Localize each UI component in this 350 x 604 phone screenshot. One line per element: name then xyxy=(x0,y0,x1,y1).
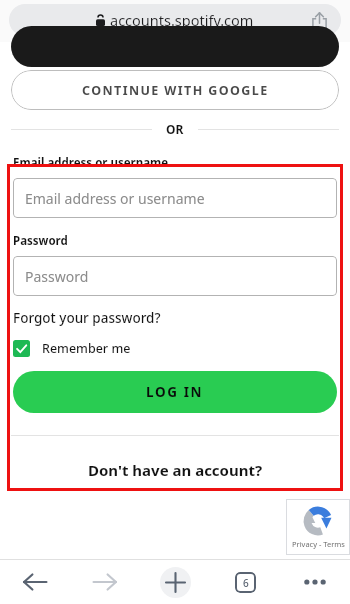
button[interactable]: reCAPTCHA privacy and terms xyxy=(286,499,350,555)
staticText: accounts.spotify.com xyxy=(110,10,254,30)
button[interactable]: Forward xyxy=(70,560,140,604)
staticText: 6 xyxy=(243,576,249,590)
button[interactable]: Email address or username xyxy=(13,178,337,218)
staticText: Forgot your password? xyxy=(13,309,161,327)
button[interactable]: LOG IN xyxy=(13,371,337,413)
button[interactable]: More xyxy=(280,560,350,604)
staticText: Remember me xyxy=(42,340,131,357)
staticText: Email address or username xyxy=(13,155,169,171)
button[interactable]: New tab xyxy=(140,560,210,604)
button[interactable]: Tabs xyxy=(210,560,280,604)
button[interactable]: CONTINUE WITH GOOGLE xyxy=(11,70,339,110)
button[interactable]: Share xyxy=(307,8,331,32)
staticText: Password xyxy=(13,233,68,249)
button[interactable]: Back xyxy=(0,560,70,604)
button[interactable]: Forgot your password? xyxy=(13,309,161,327)
staticText: CONTINUE WITH GOOGLE xyxy=(82,82,269,99)
staticText: Privacy - Terms xyxy=(292,539,345,549)
button[interactable] xyxy=(11,26,339,67)
staticText: Don't have an account? xyxy=(88,460,263,480)
button[interactable]: Password xyxy=(13,256,337,296)
staticText: Password xyxy=(25,267,89,286)
button[interactable]: accounts.spotify.com xyxy=(9,4,341,36)
staticText: Email address or username xyxy=(25,189,205,208)
staticText: LOG IN xyxy=(146,383,204,401)
button[interactable]: Remember me xyxy=(13,340,131,357)
staticText: OR xyxy=(166,121,184,137)
